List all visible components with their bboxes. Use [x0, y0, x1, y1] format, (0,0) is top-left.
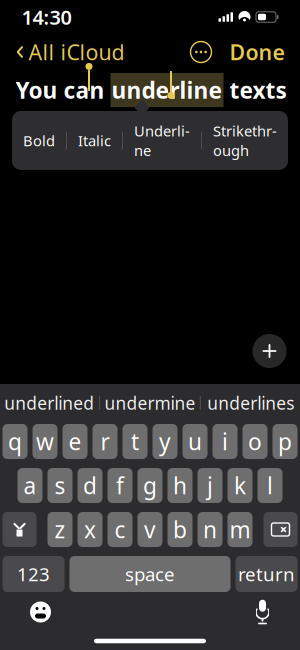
staticText: texts: [223, 75, 286, 105]
staticText: z: [54, 514, 65, 544]
staticText: t: [131, 426, 139, 456]
button[interactable]: k: [227, 468, 252, 503]
button[interactable]: h: [167, 468, 192, 503]
button[interactable]: c: [107, 512, 132, 547]
button[interactable]: v: [137, 512, 162, 547]
staticText: u: [188, 426, 202, 456]
button[interactable]: Add attachment: [252, 334, 286, 368]
staticText: f: [116, 470, 124, 500]
button[interactable]: l: [257, 468, 282, 503]
button[interactable]: Strikethrough: [202, 111, 288, 170]
staticText: q: [8, 426, 22, 456]
button[interactable]: 123: [2, 556, 64, 592]
staticText: You can: [15, 75, 104, 105]
staticText: o: [248, 426, 262, 456]
button[interactable]: undermine: [100, 383, 200, 422]
staticText: Strikethrough: [213, 121, 277, 160]
staticText: Bold: [23, 131, 55, 150]
staticText: k: [234, 470, 246, 500]
button[interactable]: r: [92, 424, 117, 459]
staticText: g: [143, 470, 157, 500]
button[interactable]: Done: [219, 32, 294, 72]
button[interactable]: Shift: [2, 512, 36, 547]
staticText: x: [84, 514, 96, 544]
button[interactable]: z: [47, 512, 72, 547]
button[interactable]: d: [77, 468, 102, 503]
button[interactable]: return: [235, 556, 297, 592]
button[interactable]: x: [77, 512, 102, 547]
button[interactable]: underlined: [0, 383, 99, 422]
button[interactable]: More: [182, 33, 219, 70]
button[interactable]: f: [107, 468, 132, 503]
staticText: return: [238, 562, 295, 586]
button[interactable]: p: [272, 424, 297, 459]
staticText: l: [267, 470, 273, 500]
staticText: Done: [229, 38, 284, 66]
button[interactable]: Delete: [263, 512, 297, 547]
button[interactable]: m: [227, 512, 252, 547]
button[interactable]: Bold: [12, 121, 66, 160]
button[interactable]: o: [242, 424, 267, 459]
button[interactable]: w: [32, 424, 57, 459]
button[interactable]: g: [137, 468, 162, 503]
staticText: 14:30: [21, 4, 71, 30]
button[interactable]: u: [182, 424, 207, 459]
button[interactable]: i: [212, 424, 237, 459]
staticText: r: [100, 426, 109, 456]
staticText: underlined: [4, 391, 94, 414]
button[interactable]: n: [197, 512, 222, 547]
staticText: n: [203, 514, 217, 544]
button[interactable]: Emoji: [21, 593, 59, 631]
staticText: Italic: [78, 131, 111, 150]
button[interactable]: Italic: [67, 121, 122, 160]
staticText: 123: [17, 562, 50, 586]
button[interactable]: Dictate: [246, 592, 278, 632]
button[interactable]: Underline: [123, 111, 201, 170]
button[interactable]: j: [197, 468, 222, 503]
button[interactable]: e: [62, 424, 87, 459]
button[interactable]: y: [152, 424, 177, 459]
staticText: i: [222, 426, 228, 456]
button[interactable]: s: [47, 468, 72, 503]
button[interactable]: underlines: [201, 383, 300, 422]
staticText: p: [278, 426, 292, 456]
button[interactable]: All iCloud: [5, 32, 134, 72]
button[interactable]: a: [17, 468, 42, 503]
staticText: b: [173, 514, 187, 544]
staticText: Underline: [134, 121, 190, 160]
staticText: underline: [111, 75, 222, 105]
staticText: s: [54, 470, 65, 500]
button[interactable]: b: [167, 512, 192, 547]
staticText: v: [144, 514, 156, 544]
button[interactable]: space: [69, 556, 230, 592]
staticText: undermine: [104, 391, 195, 414]
staticText: j: [207, 470, 213, 500]
staticText: c: [114, 514, 125, 544]
button[interactable]: t: [122, 424, 147, 459]
staticText: underlines: [207, 391, 294, 414]
staticText: y: [159, 426, 171, 456]
staticText: h: [173, 470, 187, 500]
staticText: m: [229, 514, 250, 544]
button[interactable]: q: [2, 424, 27, 459]
staticText: d: [83, 470, 97, 500]
staticText: space: [125, 562, 175, 586]
staticText: e: [68, 426, 81, 456]
staticText: All iCloud: [28, 38, 124, 66]
staticText: a: [23, 470, 36, 500]
staticText: w: [36, 426, 54, 456]
